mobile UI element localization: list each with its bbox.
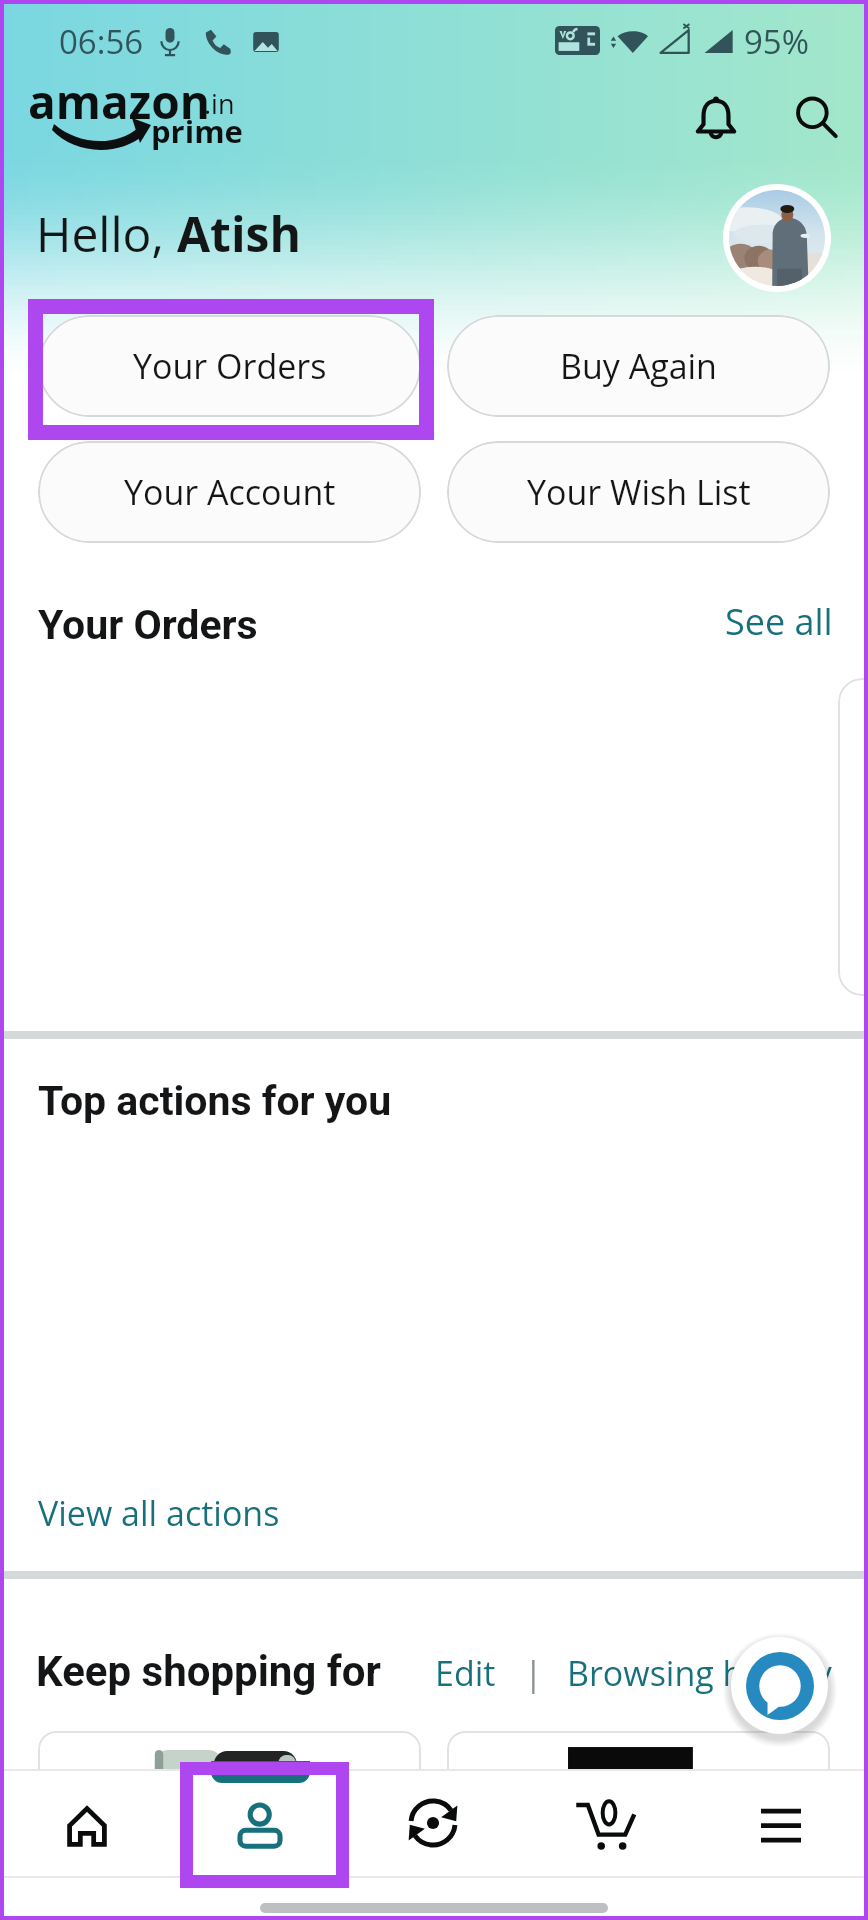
button[interactable] bbox=[838, 678, 868, 996]
button[interactable]: Your Account bbox=[38, 441, 421, 543]
button[interactable] bbox=[38, 1731, 421, 1881]
staticText: prime bbox=[151, 110, 243, 152]
button[interactable]: Your Orders bbox=[38, 601, 258, 649]
staticText: Hello, bbox=[36, 201, 177, 266]
button[interactable]: Search bbox=[786, 88, 846, 148]
staticText: | bbox=[524, 1650, 543, 1696]
staticText: Your Orders bbox=[133, 343, 327, 389]
button[interactable]: Edit bbox=[435, 1650, 496, 1696]
staticText: 95% bbox=[744, 19, 810, 64]
staticText: .in bbox=[204, 85, 235, 122]
staticText: View all actions bbox=[38, 1490, 280, 1536]
staticText: 06:56 bbox=[59, 19, 144, 64]
staticText: Your Orders bbox=[38, 601, 258, 649]
button[interactable]: View all actions bbox=[38, 1490, 280, 1536]
button[interactable]: Notifications bbox=[686, 88, 746, 148]
staticText: Buy Again bbox=[560, 343, 717, 389]
button[interactable]: Your Wish List bbox=[447, 441, 830, 543]
button[interactable]: Your Account bbox=[173, 1769, 346, 1877]
staticText: amazon bbox=[28, 70, 210, 133]
button[interactable]: Menu bbox=[694, 1769, 868, 1877]
button[interactable]: Browsing history bbox=[567, 1650, 832, 1696]
button[interactable]: Profile bbox=[723, 184, 831, 292]
staticText: Top actions for you bbox=[38, 1077, 392, 1125]
staticText: Browsing history bbox=[567, 1650, 832, 1696]
button[interactable]: See all bbox=[725, 597, 833, 646]
button[interactable]: Buy again bbox=[346, 1769, 520, 1877]
staticText: Edit bbox=[435, 1650, 496, 1696]
button[interactable]: Your Orders bbox=[38, 315, 421, 417]
button[interactable]: Cart bbox=[520, 1769, 694, 1877]
staticText: See all bbox=[725, 597, 833, 646]
staticText: Your Wish List bbox=[527, 469, 751, 515]
button[interactable]: Home bbox=[0, 1769, 173, 1877]
button[interactable]: Buy Again bbox=[447, 315, 830, 417]
staticText: Your Account bbox=[124, 469, 336, 515]
button[interactable]: Alexa bbox=[731, 1637, 828, 1734]
button[interactable] bbox=[447, 1731, 830, 1881]
staticText: Atish bbox=[177, 201, 302, 266]
staticText: Keep shopping for bbox=[36, 1647, 381, 1696]
